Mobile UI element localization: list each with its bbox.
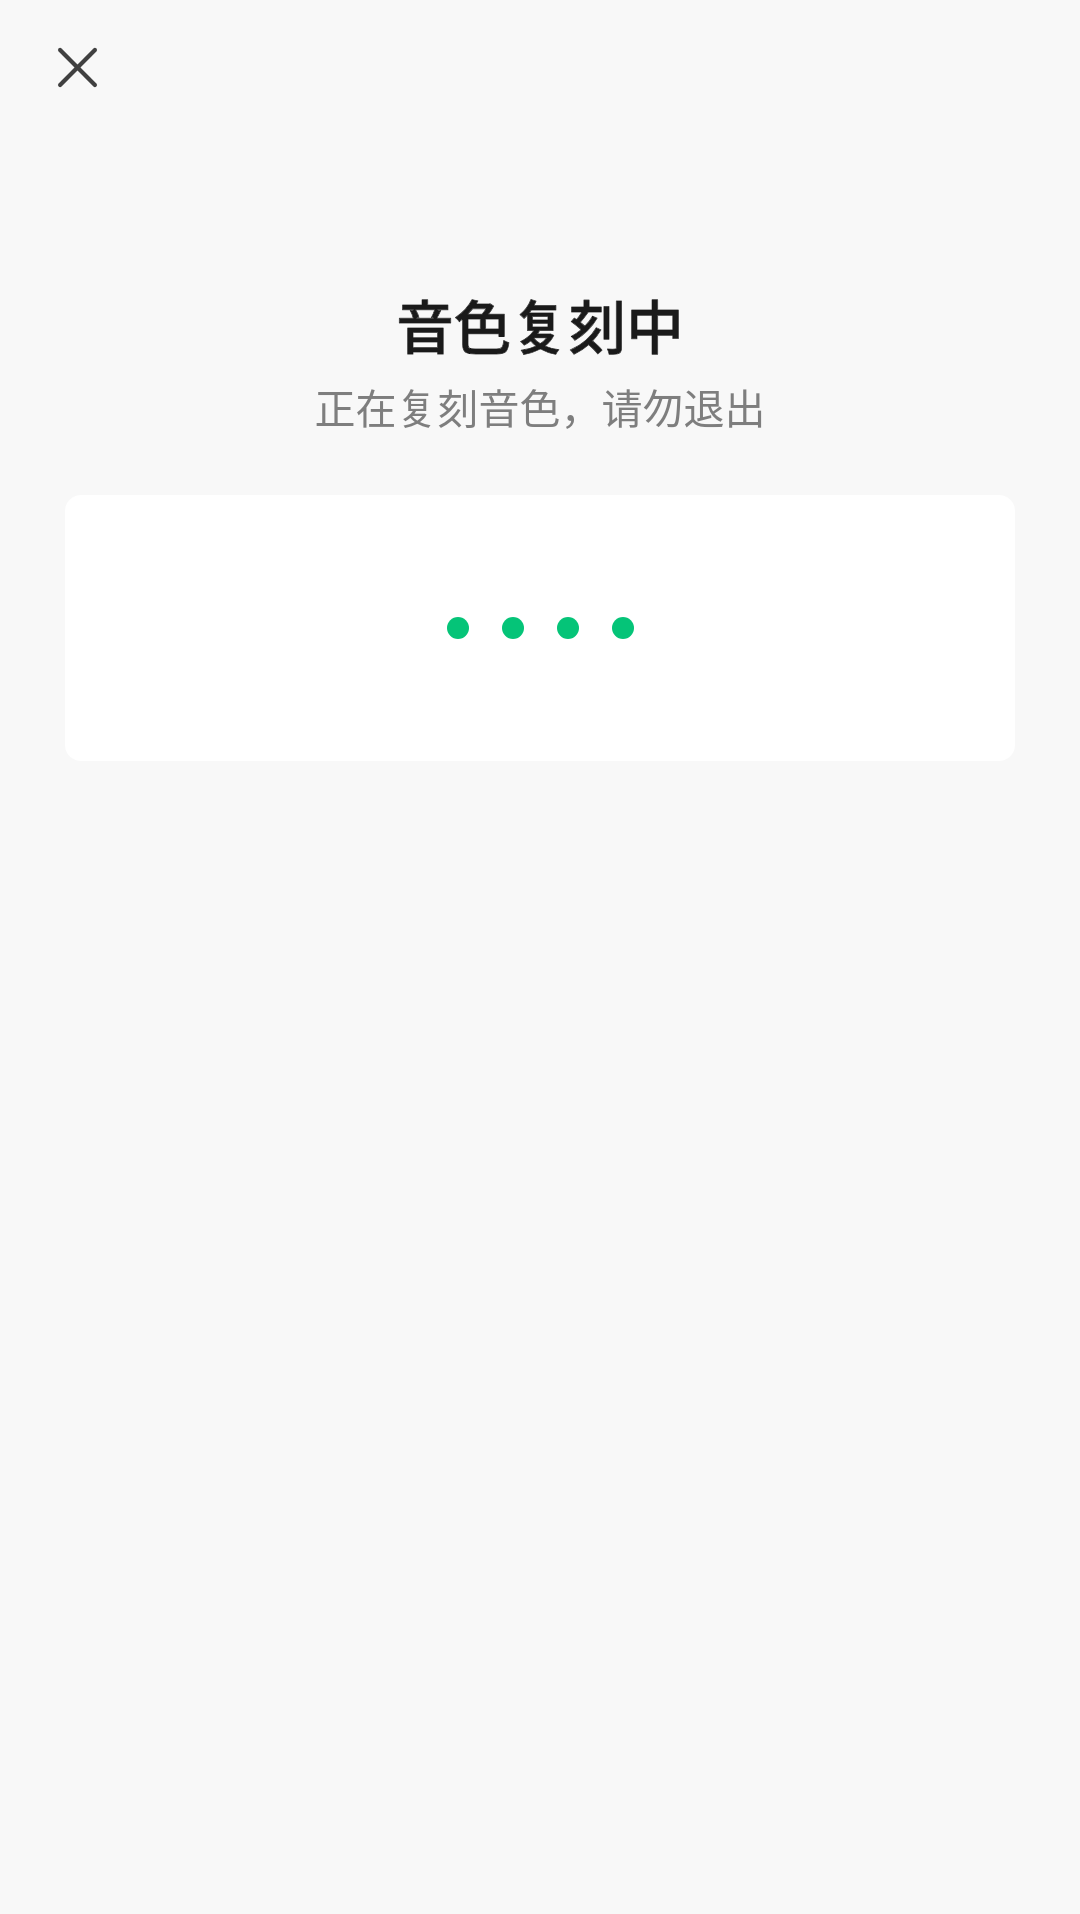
staticText: 音色复刻中 [0, 282, 1080, 365]
staticText: 正在复刻音色，请勿退出 [0, 376, 1080, 435]
button[interactable]: Close [29, 19, 125, 115]
